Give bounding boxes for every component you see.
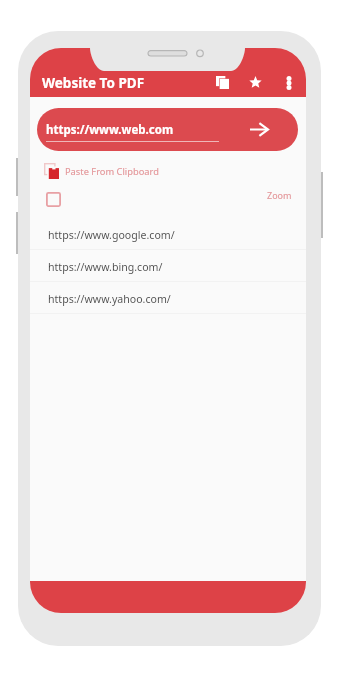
button[interactable]: Copy — [210, 70, 234, 94]
button[interactable]: Favorite — [243, 70, 267, 94]
button[interactable]: https://www.google.com/ — [30, 218, 306, 250]
button[interactable]: https://www.bing.com/ — [30, 250, 306, 282]
staticText: https://www.google.com/ — [48, 228, 175, 242]
button[interactable]: Paste From Clipboard — [44, 162, 159, 180]
button[interactable]: Select all — [46, 192, 61, 207]
button[interactable]: Go — [246, 116, 272, 142]
staticText: Paste From Clipboard — [65, 165, 159, 178]
staticText: https://www.yahoo.com/ — [48, 292, 171, 306]
button[interactable]: Zoom — [267, 189, 292, 201]
button[interactable]: More options — [277, 71, 301, 95]
staticText: https://www.bing.com/ — [48, 260, 163, 274]
button[interactable]: https://www.yahoo.com/ — [30, 282, 306, 314]
button[interactable]: https://www.web.com — [37, 108, 298, 151]
staticText: Website To PDF — [42, 74, 145, 92]
staticText: https://www.web.com — [46, 122, 174, 138]
